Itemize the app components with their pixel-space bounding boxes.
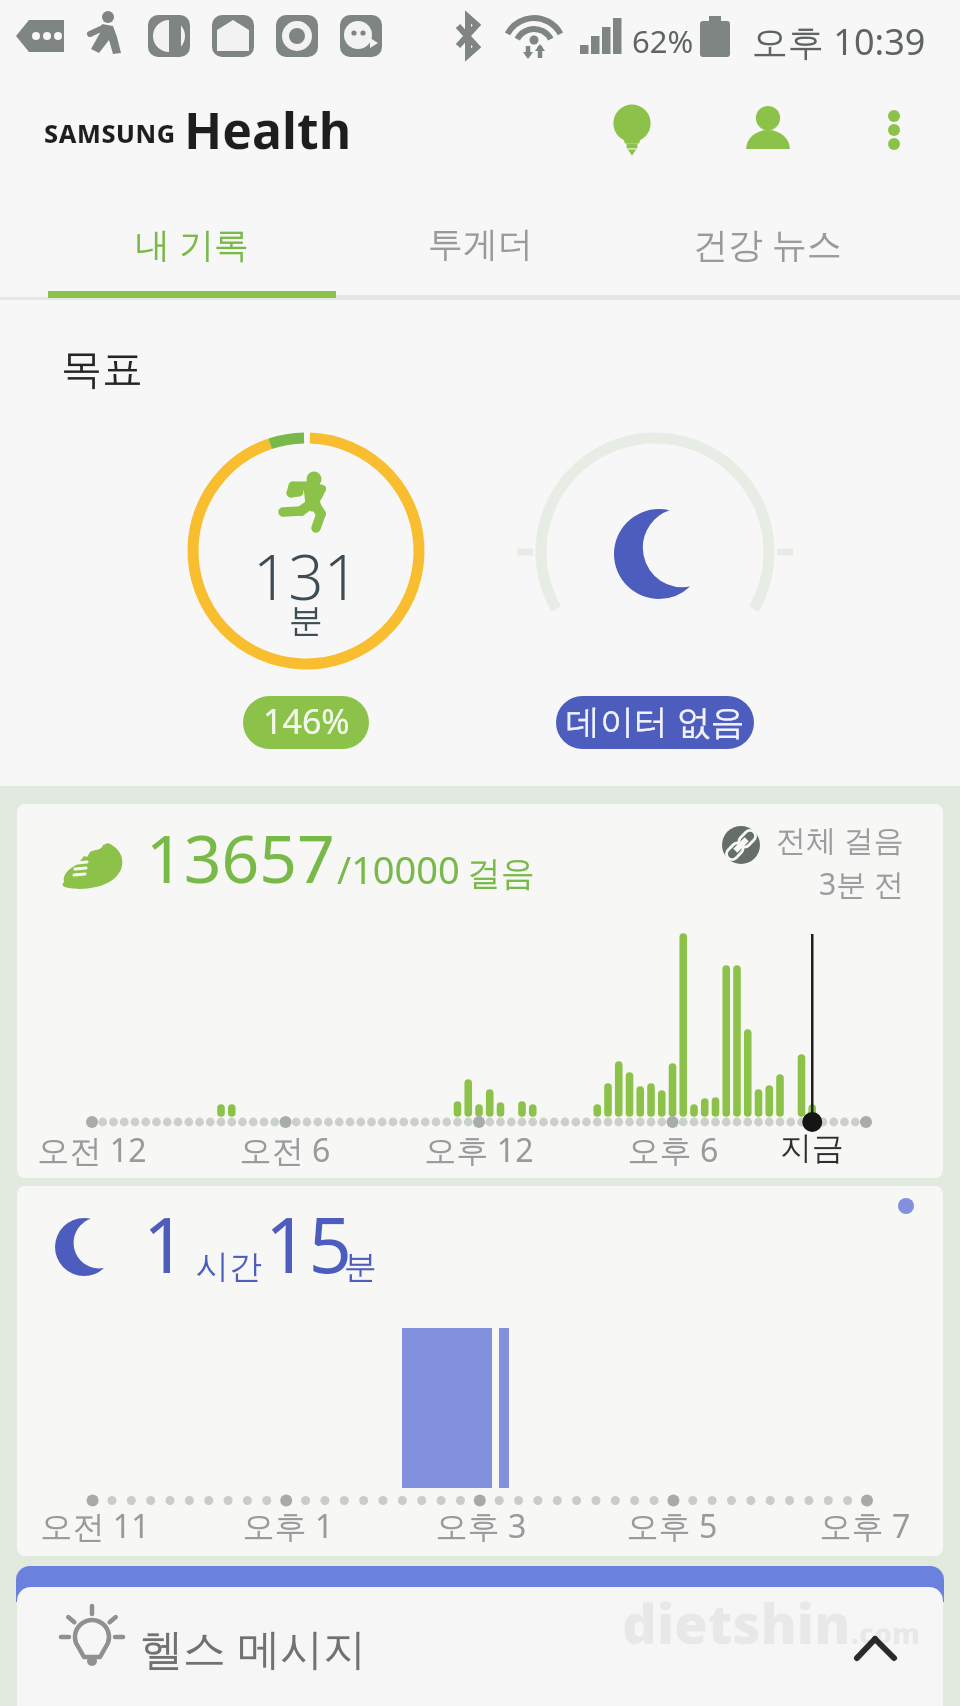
- staticText: 분: [344, 1246, 377, 1288]
- staticText: 146%: [263, 698, 350, 744]
- button[interactable]: 1: [17, 1186, 943, 1556]
- staticText: 15: [265, 1192, 352, 1296]
- button[interactable]: 내 기록: [48, 176, 336, 298]
- staticText: 목표: [61, 344, 143, 396]
- staticText: 지금: [722, 1128, 902, 1168]
- staticText: 오전 6: [195, 1128, 375, 1172]
- staticText: SAMSUNG: [44, 116, 176, 150]
- button[interactable]: 투게더: [336, 176, 624, 298]
- staticText: 시간: [196, 1246, 262, 1288]
- staticText: 건강 뉴스: [693, 220, 843, 268]
- staticText: dietshin: [622, 1586, 851, 1660]
- staticText: 오전 12: [17, 1128, 182, 1172]
- staticText: 13657: [146, 812, 335, 902]
- staticText: 데이터 없음: [566, 698, 745, 744]
- staticText: 오후 10:39: [752, 17, 926, 66]
- staticText: 3분 전: [819, 863, 904, 904]
- staticText: 걸음: [467, 852, 535, 895]
- staticText: 전체 걸음: [776, 819, 904, 860]
- staticText: 오전 11: [17, 1504, 185, 1548]
- staticText: 오후 7: [775, 1504, 943, 1548]
- staticText: 오후 5: [582, 1504, 762, 1548]
- staticText: 131: [180, 534, 432, 618]
- staticText: 오후 1: [198, 1504, 378, 1548]
- button[interactable]: Active minutes goal: [181, 426, 431, 676]
- button[interactable]: 건강 뉴스: [624, 176, 912, 298]
- button[interactable]: 데이터 없음: [556, 696, 754, 749]
- staticText: 62%: [632, 20, 694, 62]
- staticText: 헬스 메시지: [140, 1618, 367, 1677]
- staticText: 분: [180, 599, 432, 642]
- staticText: .com: [851, 1614, 921, 1652]
- button[interactable]: Sleep goal: [530, 428, 780, 678]
- staticText: /10000: [337, 843, 460, 895]
- staticText: 오후 3: [391, 1504, 571, 1548]
- staticText: Health: [184, 96, 352, 164]
- button[interactable]: Tips: [592, 84, 672, 176]
- button[interactable]: 헬스 메시지: [17, 1587, 943, 1706]
- staticText: 투게더: [428, 222, 533, 266]
- button[interactable]: 13657: [17, 804, 943, 1178]
- staticText: 오후 6: [583, 1128, 763, 1172]
- staticText: 내 기록: [135, 220, 250, 268]
- button[interactable]: Profile: [728, 84, 808, 176]
- button[interactable]: More options: [854, 84, 934, 176]
- button[interactable]: 146%: [243, 696, 369, 749]
- staticText: 1: [143, 1192, 187, 1296]
- staticText: 오후 12: [389, 1128, 569, 1172]
